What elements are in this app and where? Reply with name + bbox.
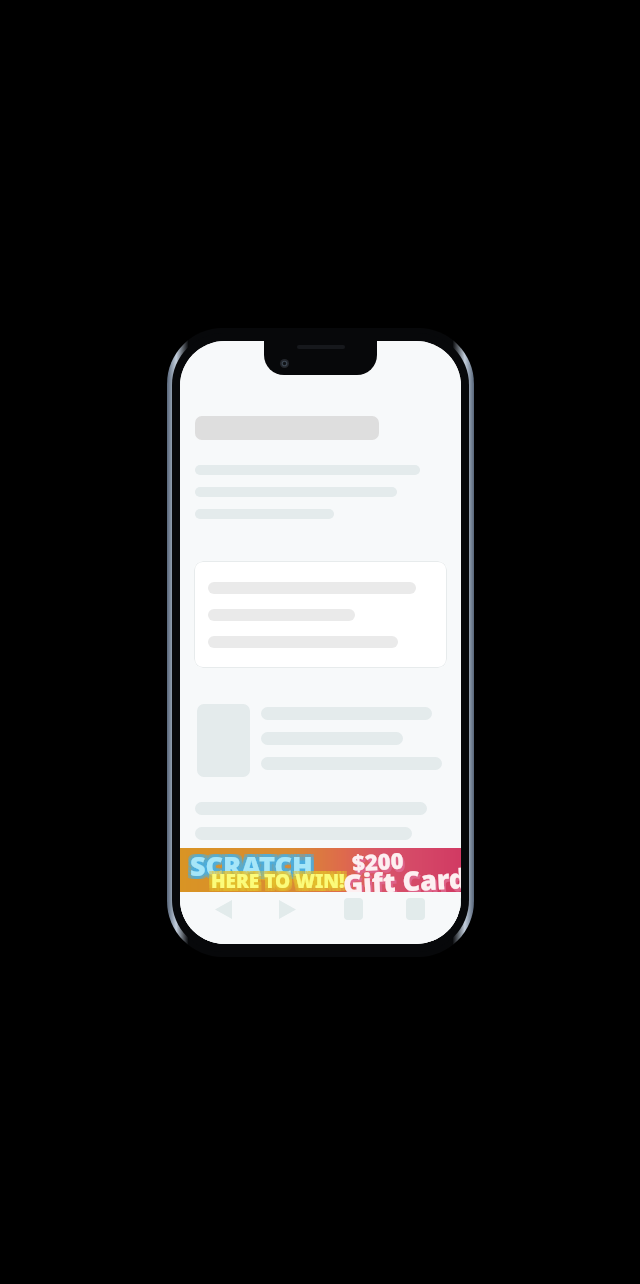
- staticText: SCRATCH: [193, 847, 316, 884]
- staticText: SCRATCH: [193, 844, 316, 881]
- staticText: HERE TO WIN!: [208, 871, 342, 897]
- button[interactable]: Bookmarks: [398, 892, 432, 926]
- staticText: HERE TO WIN!: [211, 865, 345, 891]
- staticText: HERE TO WIN!: [208, 865, 342, 891]
- button[interactable]: Forward: [270, 892, 304, 926]
- button[interactable]: Menu: [460, 892, 461, 926]
- button[interactable]: SCRATCH: [180, 848, 461, 892]
- staticText: SCRATCH: [190, 844, 313, 881]
- staticText: Gift Card!: [344, 861, 461, 905]
- staticText: Gift Card!: [342, 859, 461, 902]
- staticText: SCRATCH: [187, 850, 310, 887]
- staticText: HERE TO WIN!: [211, 868, 345, 894]
- staticText: HERE TO WIN!: [214, 865, 348, 891]
- staticText: SCRATCH: [187, 844, 310, 881]
- button[interactable]: Tabs: [336, 892, 370, 926]
- staticText: $200: [353, 848, 407, 880]
- staticText: HERE TO WIN!: [214, 871, 348, 897]
- staticText: HERE TO WIN!: [208, 868, 342, 894]
- staticText: HERE TO WIN!: [214, 868, 348, 894]
- staticText: SCRATCH: [193, 850, 316, 887]
- button[interactable]: Back: [206, 892, 240, 926]
- button[interactable]: [194, 561, 447, 668]
- staticText: $200: [351, 845, 405, 877]
- staticText: SCRATCH: [187, 847, 310, 884]
- staticText: SCRATCH: [190, 847, 313, 884]
- staticText: SCRATCH: [190, 850, 313, 887]
- staticText: HERE TO WIN!: [211, 871, 345, 897]
